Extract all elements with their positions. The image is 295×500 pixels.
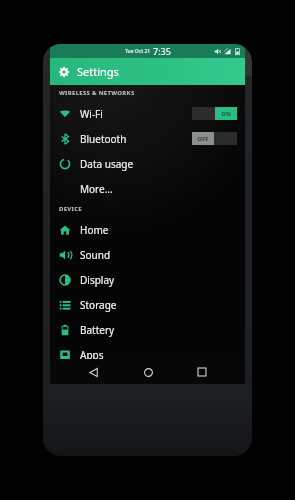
staticText: Bluetooth	[80, 132, 127, 146]
staticText: Storage	[80, 298, 117, 312]
button[interactable]: Sound	[50, 242, 245, 267]
button[interactable]: Toggle off	[192, 132, 237, 145]
staticText: Sound	[80, 248, 111, 262]
button[interactable]: Display	[50, 267, 245, 292]
staticText: OFF	[197, 135, 209, 143]
staticText: WIRELESS & NETWORKS	[59, 89, 135, 97]
staticText: Apps	[80, 348, 104, 362]
button[interactable]: Back	[82, 361, 104, 383]
button[interactable]: Apps	[50, 342, 245, 367]
button[interactable]: Battery	[50, 317, 245, 342]
staticText: Display	[80, 273, 115, 287]
staticText: Settings	[77, 64, 119, 79]
staticText: 7:35	[153, 45, 171, 57]
staticText: Tue Oct 21	[125, 48, 151, 55]
button[interactable]: Toggle on	[192, 107, 237, 120]
staticText: DEVICE	[59, 205, 82, 213]
button[interactable]: More...	[50, 176, 245, 201]
staticText: Home	[80, 223, 109, 237]
staticText: Battery	[80, 323, 115, 337]
button[interactable]: Recent apps	[191, 361, 213, 383]
button[interactable]: Bluetooth	[50, 126, 245, 151]
staticText: Data usage	[80, 157, 134, 171]
button[interactable]: Home	[50, 217, 245, 242]
button[interactable]: Data usage	[50, 151, 245, 176]
button[interactable]: Home	[137, 361, 159, 383]
button[interactable]: Storage	[50, 292, 245, 317]
button[interactable]: Wi-Fi	[50, 101, 245, 126]
button[interactable]: Settings	[50, 58, 245, 85]
staticText: More...	[80, 182, 113, 196]
staticText: Wi-Fi	[80, 107, 103, 121]
staticText: ON	[221, 110, 231, 118]
